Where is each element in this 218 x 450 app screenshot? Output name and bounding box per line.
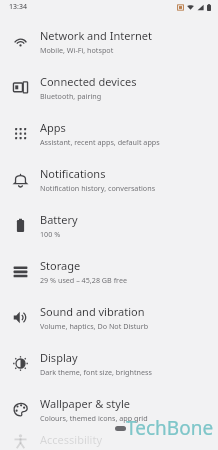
button[interactable]: Apps (0, 110, 218, 156)
staticText: Apps (40, 120, 66, 135)
button[interactable]: Accessibility (0, 432, 218, 450)
staticText: Network and Internet (40, 28, 152, 43)
button[interactable]: Battery (0, 202, 218, 248)
staticText: Colours, themed icons, app grid (40, 413, 148, 423)
staticText: 13:34 (9, 2, 27, 12)
staticText: Wallpaper & style (40, 396, 130, 411)
staticText: Notifications (40, 166, 106, 181)
staticText: Storage (40, 258, 81, 273)
button[interactable]: Storage (0, 248, 218, 294)
button[interactable]: Sound and vibration (0, 294, 218, 340)
staticText: Connected devices (40, 74, 137, 89)
staticText: Accessibility (40, 432, 103, 447)
button[interactable]: Notifications (0, 156, 218, 202)
staticText: Battery (40, 212, 78, 227)
staticText: TechBone (126, 415, 214, 441)
staticText: Mobile, Wi-Fi, hotspot (40, 45, 114, 55)
staticText: Volume, haptics, Do Not Disturb (40, 321, 149, 331)
button[interactable]: Wallpaper & style (0, 386, 218, 432)
staticText: Notification history, conversations (40, 183, 156, 193)
staticText: Bluetooth, pairing (40, 91, 102, 101)
staticText: Dark theme, font size, brightness (40, 367, 152, 377)
staticText: 29 % used – 45,28 GB free (40, 275, 128, 285)
staticText: Display (40, 350, 78, 365)
staticText: Sound and vibration (40, 304, 145, 319)
staticText: 100 % (40, 229, 61, 239)
button[interactable]: Network and Internet (0, 18, 218, 64)
button[interactable]: Connected devices (0, 64, 218, 110)
staticText: Assistant, recent apps, default apps (40, 137, 160, 147)
button[interactable]: Display (0, 340, 218, 386)
